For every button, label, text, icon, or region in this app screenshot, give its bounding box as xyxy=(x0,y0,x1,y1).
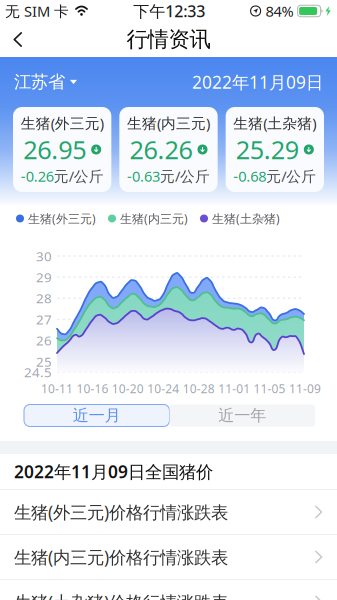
staticText: 84% xyxy=(266,1,294,21)
staticText: 行情资讯 xyxy=(126,26,210,53)
staticText: 10-20 xyxy=(112,380,144,396)
staticText: 生猪(土杂猪) xyxy=(233,113,316,133)
button[interactable]: 生猪(外三元)价格行情涨跌表 xyxy=(0,490,337,535)
staticText: 江苏省 xyxy=(14,71,65,93)
staticText: 元/公斤 xyxy=(266,166,316,186)
staticText: 30 xyxy=(36,247,52,265)
staticText: 25.29 xyxy=(236,133,299,166)
staticText: 无 SIM 卡 xyxy=(5,1,69,21)
staticText: 生猪(土杂猪) xyxy=(212,210,280,226)
button[interactable]: 生猪(土杂猪)价格行情涨跌表 xyxy=(0,580,337,600)
staticText: 生猪(内三元) xyxy=(120,210,188,226)
staticText: 10-24 xyxy=(147,380,179,396)
staticText: -0.26 xyxy=(21,166,54,186)
staticText: -0.68 xyxy=(233,166,266,186)
button[interactable]: 近一月 xyxy=(24,404,169,426)
staticText: 2022年11月09日全国猪价 xyxy=(14,460,213,483)
button[interactable]: 生猪(内三元)价格行情涨跌表 xyxy=(0,535,337,580)
staticText: 10-28 xyxy=(183,380,215,396)
staticText: 10-11 xyxy=(41,380,73,396)
staticText: 11-09 xyxy=(289,380,321,396)
staticText: 生猪(外三元) xyxy=(21,113,104,133)
staticText: -0.63 xyxy=(127,166,160,186)
staticText: 25 xyxy=(36,353,52,370)
staticText: 下午12:33 xyxy=(133,0,205,22)
staticText: 近一月 xyxy=(73,406,121,425)
staticText: 生猪(内三元)价格行情涨跌表 xyxy=(14,545,228,568)
staticText: 26.26 xyxy=(129,133,192,166)
staticText: 26 xyxy=(36,331,52,349)
staticText: 元/公斤 xyxy=(160,166,210,186)
staticText: 29 xyxy=(36,268,52,286)
staticText: 28 xyxy=(36,289,52,307)
staticText: 生猪(内三元) xyxy=(127,113,210,133)
staticText: 元/公斤 xyxy=(54,166,104,186)
staticText: 生猪(土杂猪)价格行情涨跌表 xyxy=(14,590,228,600)
staticText: 11-05 xyxy=(254,380,286,396)
button[interactable]: 返回 xyxy=(0,22,37,57)
staticText: 2022年11月09日 xyxy=(192,70,323,93)
staticText: 26.95 xyxy=(23,133,86,166)
staticText: 27 xyxy=(36,310,52,328)
staticText: 生猪(外三元) xyxy=(28,210,96,226)
staticText: 生猪(外三元)价格行情涨跌表 xyxy=(14,500,228,523)
button[interactable]: 近一年 xyxy=(169,404,315,426)
staticText: 10-16 xyxy=(76,380,108,396)
staticText: 近一年 xyxy=(218,406,266,425)
staticText: 24.5 xyxy=(24,363,52,381)
staticText: 11-01 xyxy=(218,380,250,396)
button[interactable]: 江苏省 xyxy=(14,67,77,97)
